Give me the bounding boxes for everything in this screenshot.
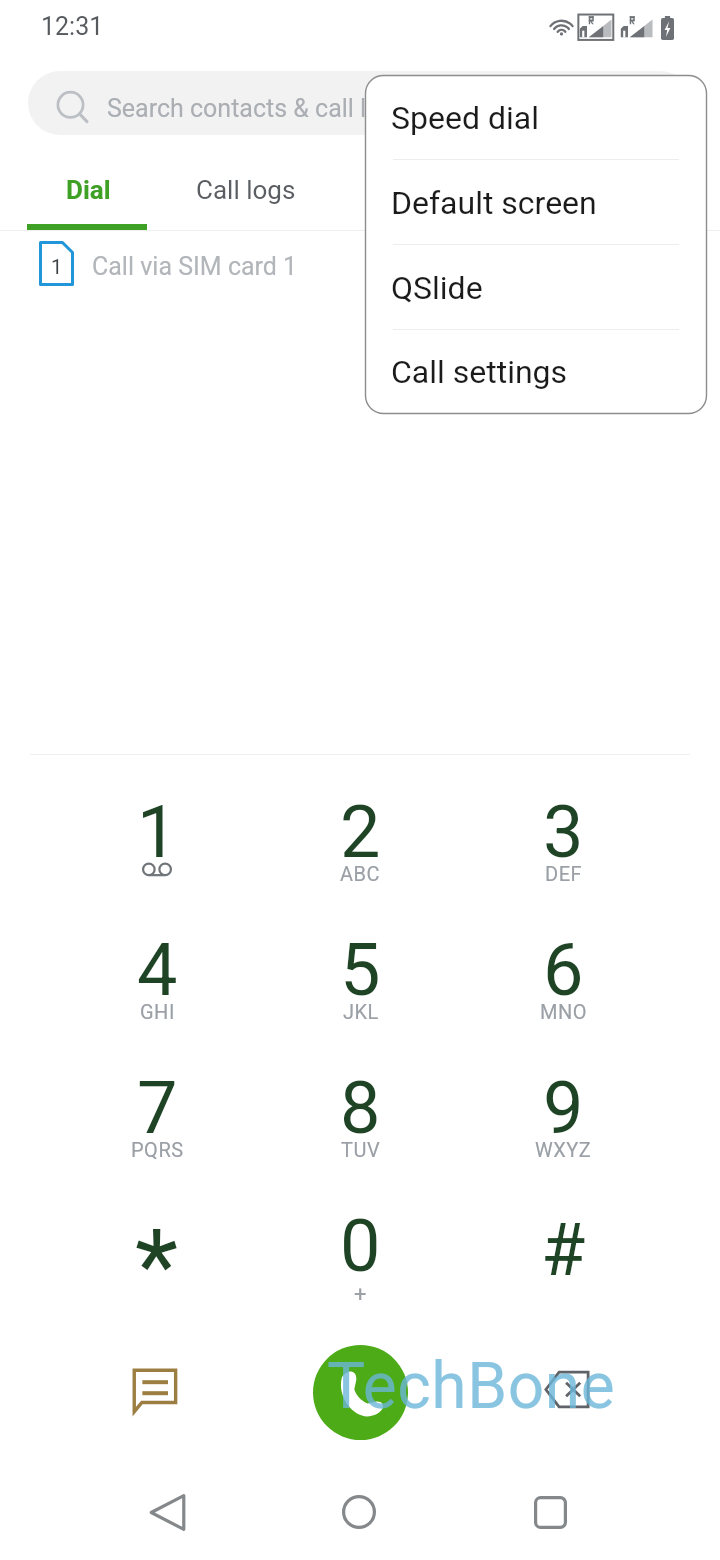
staticText: Call via SIM card 1 [92, 252, 298, 281]
staticText: + [354, 1282, 367, 1308]
staticText: GHI [140, 1000, 175, 1023]
staticText: ABC [340, 862, 381, 885]
staticText: 1 [137, 790, 178, 874]
staticText: 6 [543, 928, 584, 1012]
staticText: * [135, 1207, 179, 1324]
staticText: 5 [340, 928, 381, 1012]
button[interactable]: Speed dial [365, 75, 707, 160]
staticText: 2 [340, 790, 381, 874]
staticText: DEF [545, 862, 583, 885]
button[interactable]: Dial [0, 155, 176, 224]
staticText: 8 [340, 1066, 381, 1150]
staticText: 9 [543, 1066, 584, 1150]
staticText: 1 [51, 255, 63, 278]
staticText: Search contacts & call logs [107, 94, 408, 123]
button[interactable]: # [462, 1186, 665, 1324]
button[interactable]: Search contacts & call logs [28, 71, 692, 135]
button[interactable]: 4 [55, 910, 259, 1048]
staticText: 0 [340, 1204, 381, 1288]
staticText: Call logs [196, 175, 296, 205]
button[interactable]: Send message [55, 1324, 259, 1460]
button[interactable]: 2 [259, 772, 462, 910]
button[interactable]: 1 [0, 232, 720, 295]
button[interactable]: Recents [490, 1467, 610, 1557]
staticText: PQRS [131, 1138, 184, 1161]
staticText: 7 [137, 1066, 178, 1150]
button[interactable]: Call settings [365, 330, 707, 414]
staticText: WXYZ [535, 1138, 592, 1161]
staticText: # [541, 1208, 586, 1292]
staticText: Dial [66, 175, 111, 205]
button[interactable]: 5 [259, 910, 462, 1048]
button[interactable]: * [55, 1186, 259, 1324]
button[interactable]: 6 [462, 910, 665, 1048]
button[interactable]: Default screen [365, 160, 707, 245]
button[interactable]: 8 [259, 1048, 462, 1186]
button[interactable]: Call logs [176, 155, 315, 224]
staticText: 4 [137, 928, 178, 1012]
button[interactable]: 3 [462, 772, 665, 910]
staticText: TUV [341, 1138, 381, 1161]
staticText: QSlide [391, 269, 483, 307]
staticText: Default screen [391, 184, 597, 222]
button[interactable]: Call [313, 1345, 408, 1440]
button[interactable]: Back [107, 1467, 227, 1557]
button[interactable]: 0 [259, 1186, 462, 1324]
staticText: MNO [540, 1000, 587, 1023]
staticText: Speed dial [391, 99, 539, 137]
staticText: TechBone [327, 1349, 616, 1424]
button[interactable]: 7 [55, 1048, 259, 1186]
button[interactable]: 1 [55, 772, 259, 910]
button[interactable]: Backspace [462, 1324, 665, 1460]
staticText: Call settings [391, 353, 568, 391]
staticText: 3 [543, 790, 584, 874]
button[interactable]: 9 [462, 1048, 665, 1186]
staticText: JKL [343, 1000, 379, 1023]
staticText: 12:31 [41, 12, 104, 41]
button[interactable]: Home [299, 1467, 419, 1557]
button[interactable]: QSlide [365, 245, 707, 330]
